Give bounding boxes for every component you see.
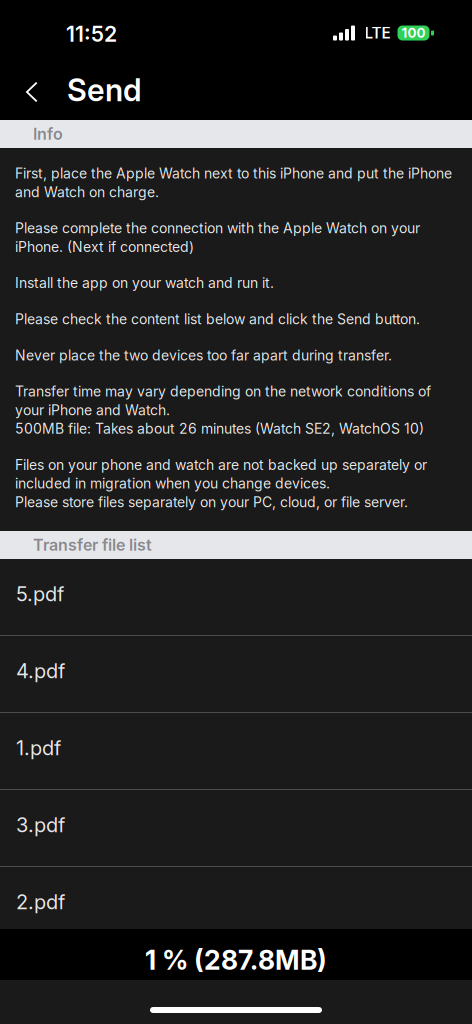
staticText: 100 bbox=[401, 25, 425, 41]
staticText: Please check the content list below and … bbox=[15, 311, 420, 328]
staticText: Install the app on your watch and run it… bbox=[15, 275, 274, 291]
staticText: 5.pdf bbox=[16, 582, 64, 606]
button[interactable]: 4.pdf bbox=[0, 636, 472, 713]
staticText: LTE bbox=[364, 24, 390, 42]
staticText: Send bbox=[67, 71, 142, 108]
staticText: Transfer time may vary depending on the … bbox=[15, 383, 431, 437]
button[interactable]: 1.pdf bbox=[0, 713, 472, 790]
staticText: 2.pdf bbox=[16, 890, 65, 914]
staticText: Transfer file list bbox=[33, 535, 152, 555]
staticText: 1.pdf bbox=[16, 736, 61, 760]
button[interactable]: 3.pdf bbox=[0, 790, 472, 867]
button[interactable]: Back bbox=[13, 67, 51, 113]
staticText: Info bbox=[33, 124, 63, 144]
staticText: Never place the two devices too far apar… bbox=[15, 347, 392, 364]
button[interactable]: 2.pdf bbox=[0, 867, 472, 944]
staticText: 3.pdf bbox=[16, 813, 65, 837]
staticText: Files on your phone and watch are not ba… bbox=[15, 456, 427, 511]
button[interactable]: 5.pdf bbox=[0, 559, 472, 636]
staticText: Please complete the connection with the … bbox=[15, 220, 420, 255]
staticText: 4.pdf bbox=[16, 659, 65, 683]
staticText: First, place the Apple Watch next to thi… bbox=[15, 165, 452, 201]
staticText: 1 % (287.8MB) bbox=[145, 944, 327, 976]
staticText: 11:52 bbox=[66, 21, 117, 47]
